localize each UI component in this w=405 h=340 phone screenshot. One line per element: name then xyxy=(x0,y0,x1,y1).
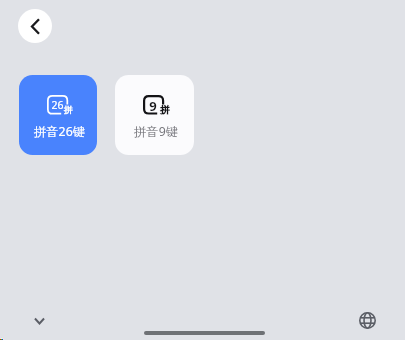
button[interactable]: Back xyxy=(18,9,52,43)
button[interactable]: 9 xyxy=(115,75,194,155)
staticText: 26 xyxy=(51,98,64,112)
button[interactable]: 26 xyxy=(19,75,97,155)
staticText: 拼 xyxy=(64,105,73,116)
staticText: 9 xyxy=(149,97,157,115)
staticText: 拼 xyxy=(160,104,170,116)
button[interactable]: Hide keyboard xyxy=(25,306,54,335)
staticText: 拼音9键 xyxy=(134,123,178,140)
staticText: 拼音26键 xyxy=(34,123,85,140)
button[interactable]: Switch input language xyxy=(353,306,382,335)
